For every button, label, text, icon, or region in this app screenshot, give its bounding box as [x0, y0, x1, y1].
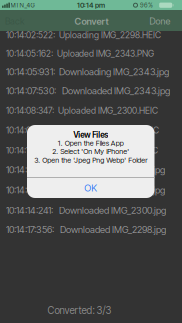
staticText: OK — [84, 182, 97, 194]
staticText: 10:14:08:964: Uploaded IMG_2298.HEIC — [6, 125, 159, 136]
staticText: 10:14:05:931: Downloading IMG_2343.jpg — [6, 66, 169, 77]
staticText: 10:14:17:356: Downloaded IMG_2298.jpg — [6, 224, 166, 235]
staticText: 10:14:10:112: Converting IMG_2343.HEIC — [6, 145, 158, 156]
staticText: 10:14:08:347: Uploaded IMG_2300.HEIC — [6, 105, 158, 116]
button[interactable]: OK — [35, 180, 147, 196]
staticText: 2. Select 'On My iPhone' — [52, 147, 129, 156]
staticText: Convert — [74, 16, 108, 27]
staticText: 10:14:12:871: Downloading IMG_2300.jpg — [6, 184, 165, 196]
staticText: Done — [149, 16, 170, 27]
staticText: 10:14:05:162: Uploaded IMG_2343.PNG — [6, 48, 154, 59]
staticText: 1. Open the Files App — [58, 139, 124, 147]
button[interactable]: Done — [149, 16, 170, 27]
staticText: 10:14:14:241: Downloaded IMG_2300.jpg — [6, 205, 166, 216]
staticText: Converted: 3/3 — [47, 304, 111, 316]
staticText: 10:14 pm — [77, 1, 105, 9]
staticText: 10:14:02:522: Uploading IMG_2298.HEIC — [6, 30, 161, 40]
staticText: 3. Open the 'Jpeg Png Webp' Folder — [34, 156, 147, 164]
staticText: 96% — [140, 1, 153, 9]
staticText: View Files — [73, 130, 108, 140]
staticText: 10:14:11:245: Downloading IMG_2298.jpg — [6, 164, 165, 175]
staticText: MTN_4G — [10, 2, 34, 9]
staticText: 10:14:07:530: Downloaded IMG_2343.jpg — [6, 85, 170, 96]
